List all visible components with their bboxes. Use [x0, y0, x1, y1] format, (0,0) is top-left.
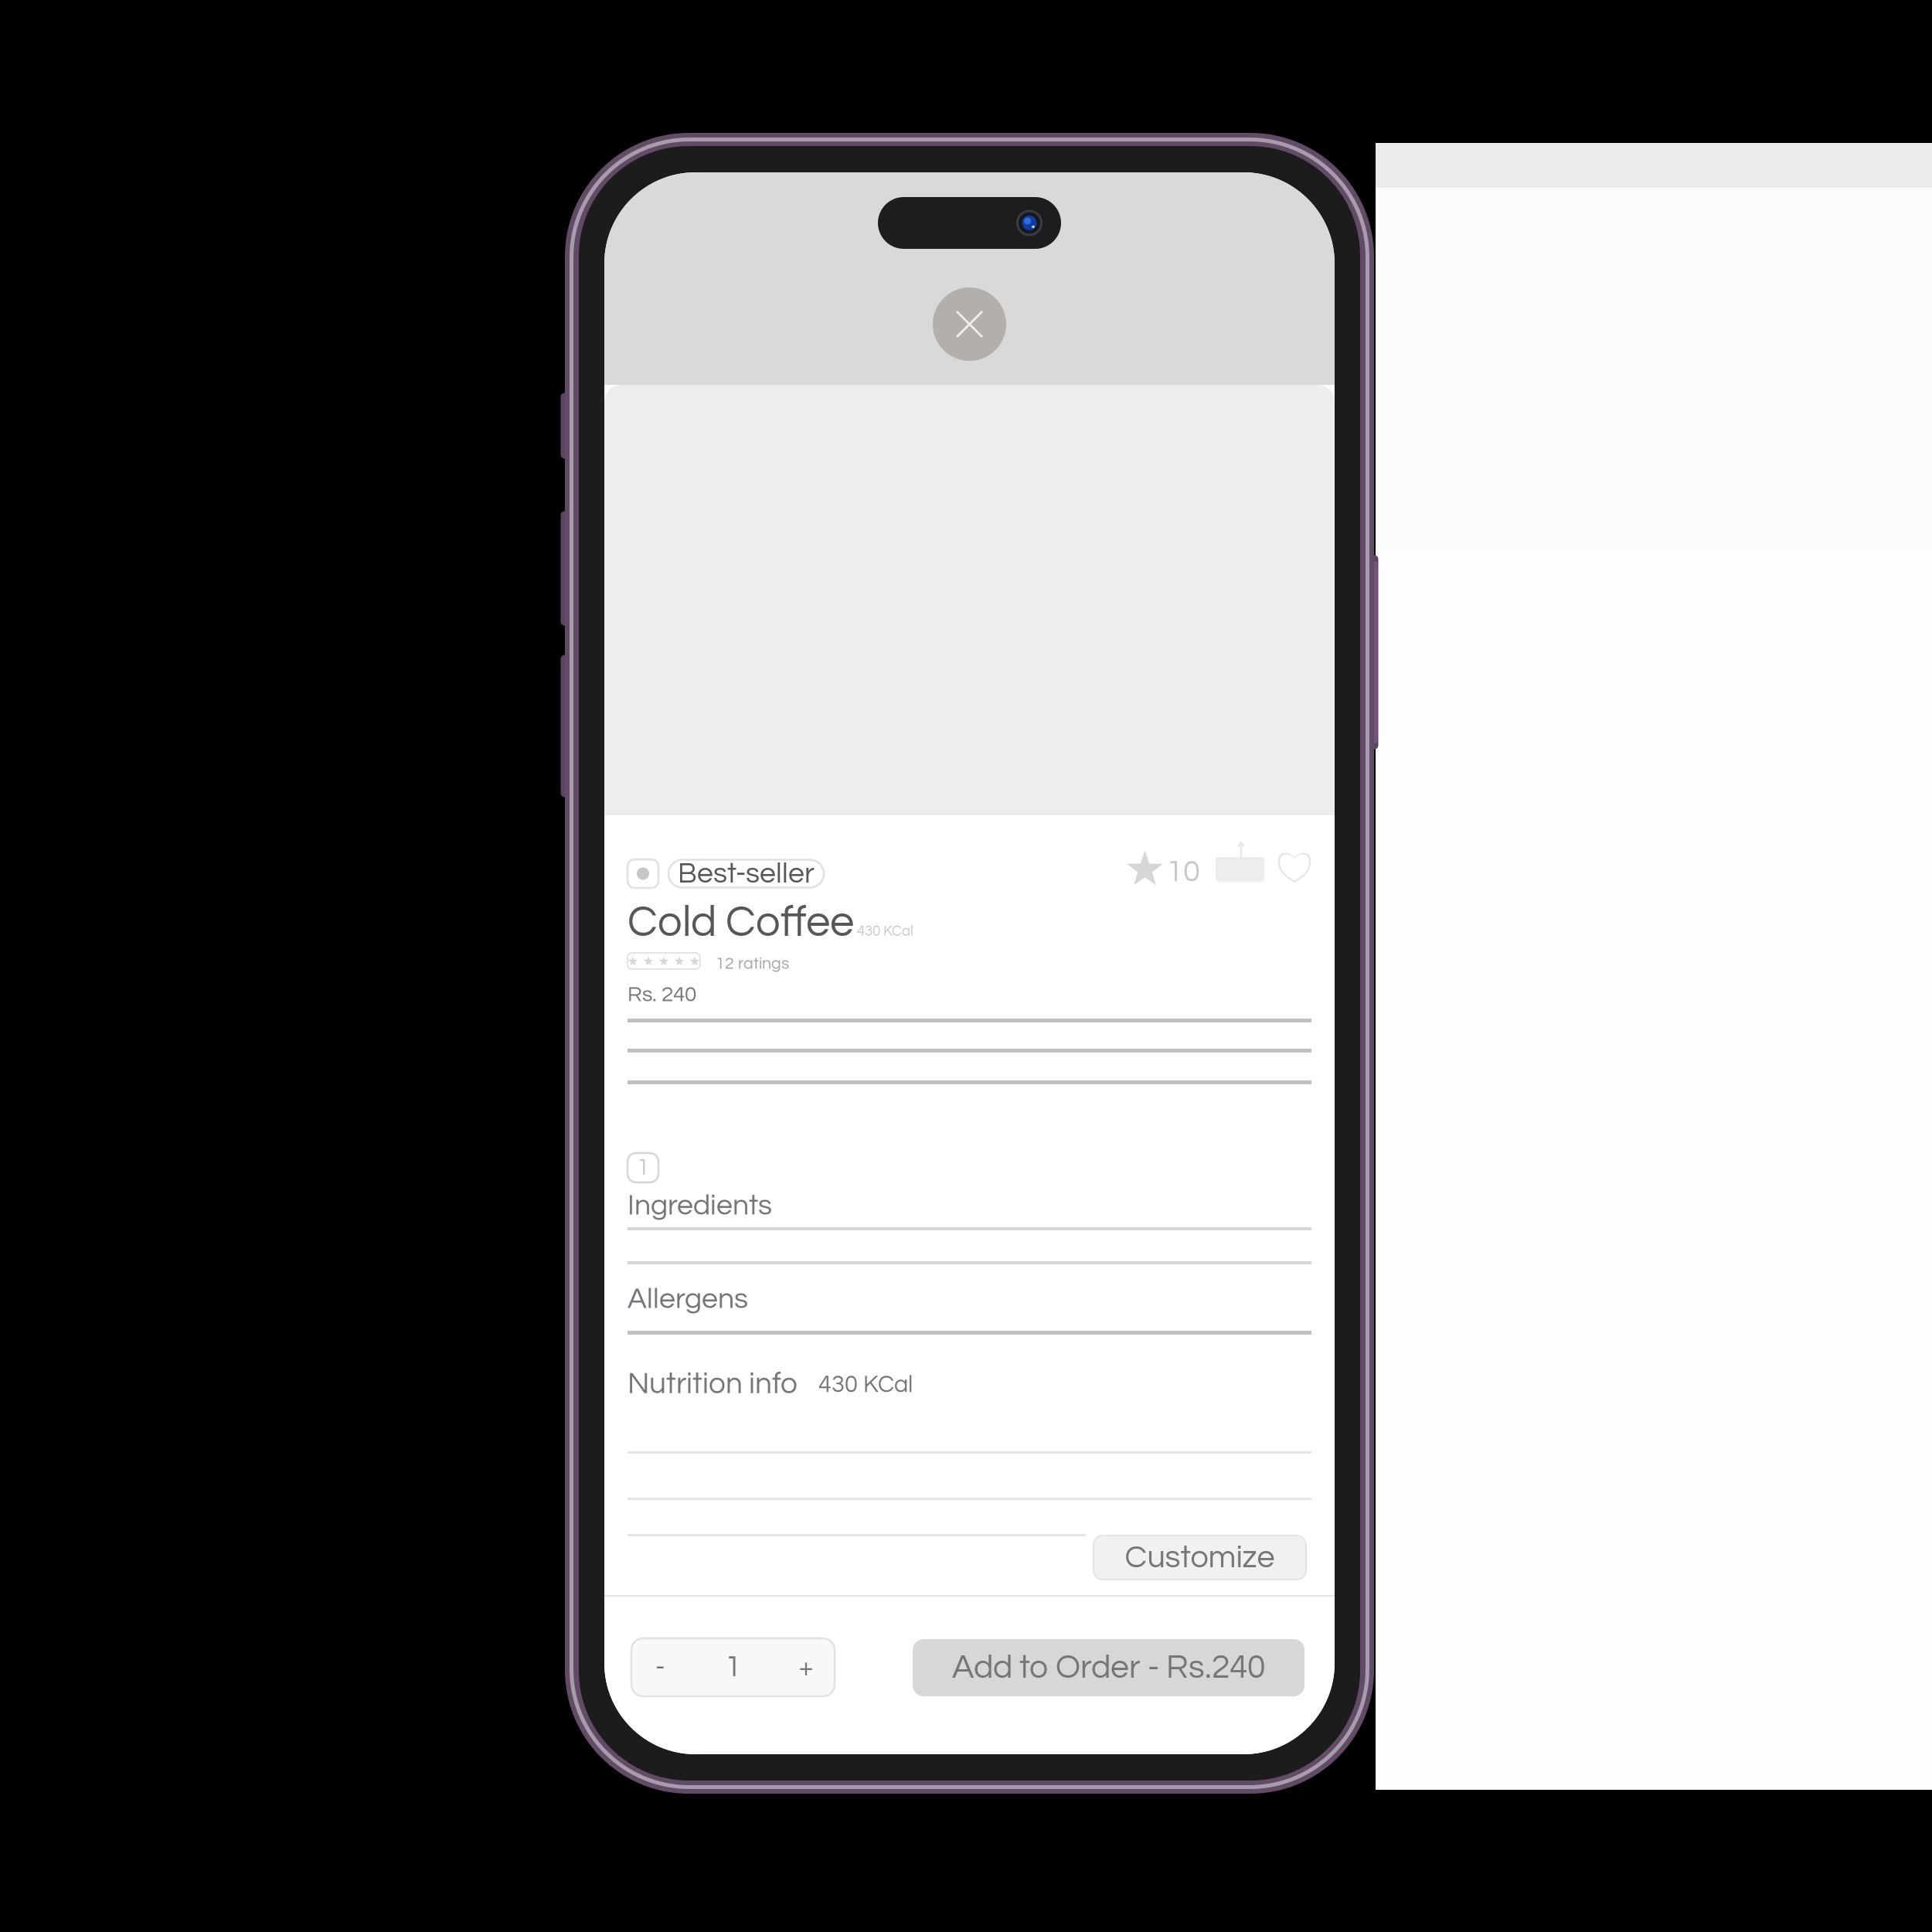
staticText: 1 [637, 1156, 649, 1179]
staticText: Nutrition info [628, 1369, 798, 1399]
staticText: 1 [725, 1652, 741, 1683]
button[interactable]: Customize [1094, 1536, 1306, 1580]
staticText: 10 [1166, 856, 1200, 888]
staticText: 430 KCal [857, 924, 913, 939]
staticText: + [799, 1653, 813, 1681]
button[interactable]: - [631, 1638, 689, 1696]
button[interactable]: Add to Order - Rs.240 [913, 1639, 1304, 1696]
staticText: Best-seller [678, 859, 815, 889]
staticText: Customize [1125, 1541, 1275, 1574]
staticText: Rs. 240 [628, 983, 696, 1006]
staticText: 430 KCal [818, 1373, 913, 1397]
staticText: - [655, 1653, 665, 1681]
staticText: Add to Order - Rs.240 [952, 1651, 1265, 1685]
staticText: Allergens [628, 1284, 748, 1314]
button[interactable]: + [777, 1638, 835, 1696]
button[interactable]: 1 [689, 1638, 777, 1696]
staticText: Ingredients [628, 1191, 772, 1220]
staticText: 12 ratings [716, 955, 789, 972]
staticText: Cold Coffee [628, 900, 854, 945]
button[interactable]: Close [933, 287, 1006, 361]
